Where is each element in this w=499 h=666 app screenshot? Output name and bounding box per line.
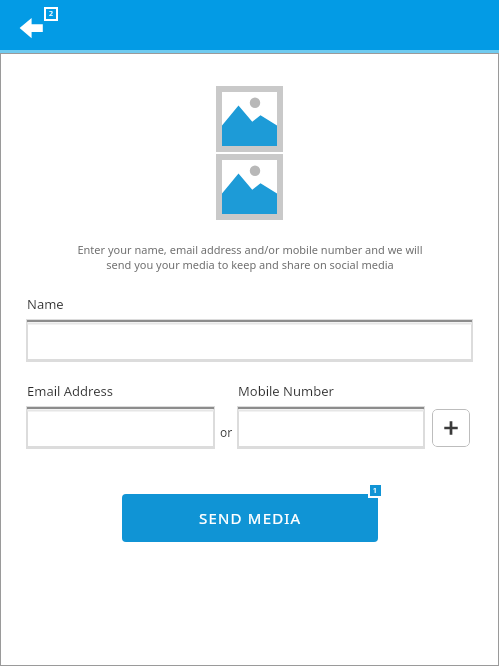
button[interactable]: SEND MEDIA: [122, 494, 378, 542]
staticText: SEND MEDIA: [199, 508, 302, 528]
staticText: or: [220, 424, 233, 440]
button[interactable]: [27, 320, 472, 361]
staticText: Mobile Number: [238, 382, 334, 400]
button[interactable]: [27, 407, 214, 448]
button[interactable]: [238, 407, 424, 448]
staticText: 2: [49, 9, 54, 19]
button[interactable]: Back, 2 items: [18, 7, 58, 41]
staticText: Enter your name, email address and/or mo…: [77, 242, 423, 272]
staticText: 1: [373, 486, 378, 496]
button[interactable]: Add: [432, 409, 470, 447]
staticText: Name: [27, 295, 64, 313]
staticText: Email Address: [27, 382, 113, 400]
